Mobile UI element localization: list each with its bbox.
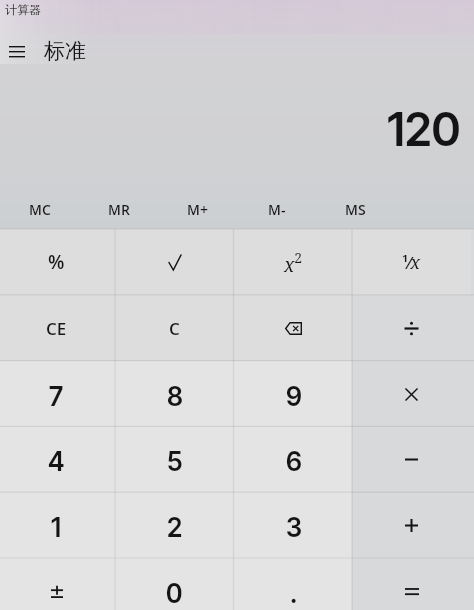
button[interactable]: Subtract [352, 426, 471, 492]
staticText: CE [46, 317, 67, 340]
staticText: 120 [387, 101, 461, 157]
staticText: 9 [286, 381, 302, 412]
staticText: 2 [167, 512, 183, 543]
staticText: MC [29, 200, 51, 219]
button[interactable]: C [115, 295, 234, 361]
staticText: ¹⁄x [402, 250, 421, 275]
button[interactable]: . [234, 558, 353, 610]
staticText: 4 [48, 446, 65, 477]
staticText: 3 [286, 512, 302, 543]
staticText: M- [268, 200, 286, 219]
button[interactable]: 4 [0, 426, 116, 492]
button[interactable]: 2 [115, 492, 234, 558]
button[interactable]: Equals [352, 558, 471, 610]
button[interactable]: MR [79, 195, 158, 223]
staticText: x2 [284, 248, 303, 277]
button[interactable]: Plus minus [0, 558, 116, 610]
button[interactable]: 1 [0, 492, 116, 558]
button[interactable]: M- [237, 195, 316, 223]
staticText: . [290, 578, 298, 609]
staticText: % [48, 249, 65, 275]
button[interactable]: Menu [1, 34, 33, 68]
staticText: C [169, 317, 180, 340]
button[interactable]: % [0, 229, 116, 295]
button[interactable]: ¹⁄x [352, 229, 471, 295]
staticText: 5 [167, 446, 183, 477]
button[interactable]: Backspace [234, 295, 353, 361]
button[interactable]: MC [0, 195, 79, 223]
button[interactable]: CE [0, 295, 116, 361]
button[interactable]: 标准 [44, 38, 86, 64]
button[interactable]: x2 [234, 229, 353, 295]
button[interactable]: 0 [115, 558, 234, 610]
staticText: 7 [49, 381, 64, 412]
button[interactable]: Multiply [352, 361, 471, 427]
staticText: M+ [187, 200, 208, 219]
button[interactable]: M+ [158, 195, 237, 223]
staticText: 0 [166, 578, 183, 609]
button[interactable]: Square root [115, 229, 234, 295]
button[interactable]: MS [316, 195, 395, 223]
button[interactable]: 5 [115, 426, 234, 492]
button[interactable]: 6 [234, 426, 353, 492]
staticText: 8 [167, 381, 183, 412]
button[interactable]: 8 [115, 361, 234, 427]
button[interactable]: Divide [352, 295, 471, 361]
staticText: MS [345, 200, 366, 219]
button[interactable]: 7 [0, 361, 116, 427]
button[interactable]: 3 [234, 492, 353, 558]
staticText: 计算器 [5, 2, 41, 17]
staticText: 1 [51, 512, 62, 543]
button[interactable]: Add [352, 492, 471, 558]
staticText: 6 [286, 446, 302, 477]
staticText: MR [108, 200, 130, 219]
button[interactable]: 9 [234, 361, 353, 427]
